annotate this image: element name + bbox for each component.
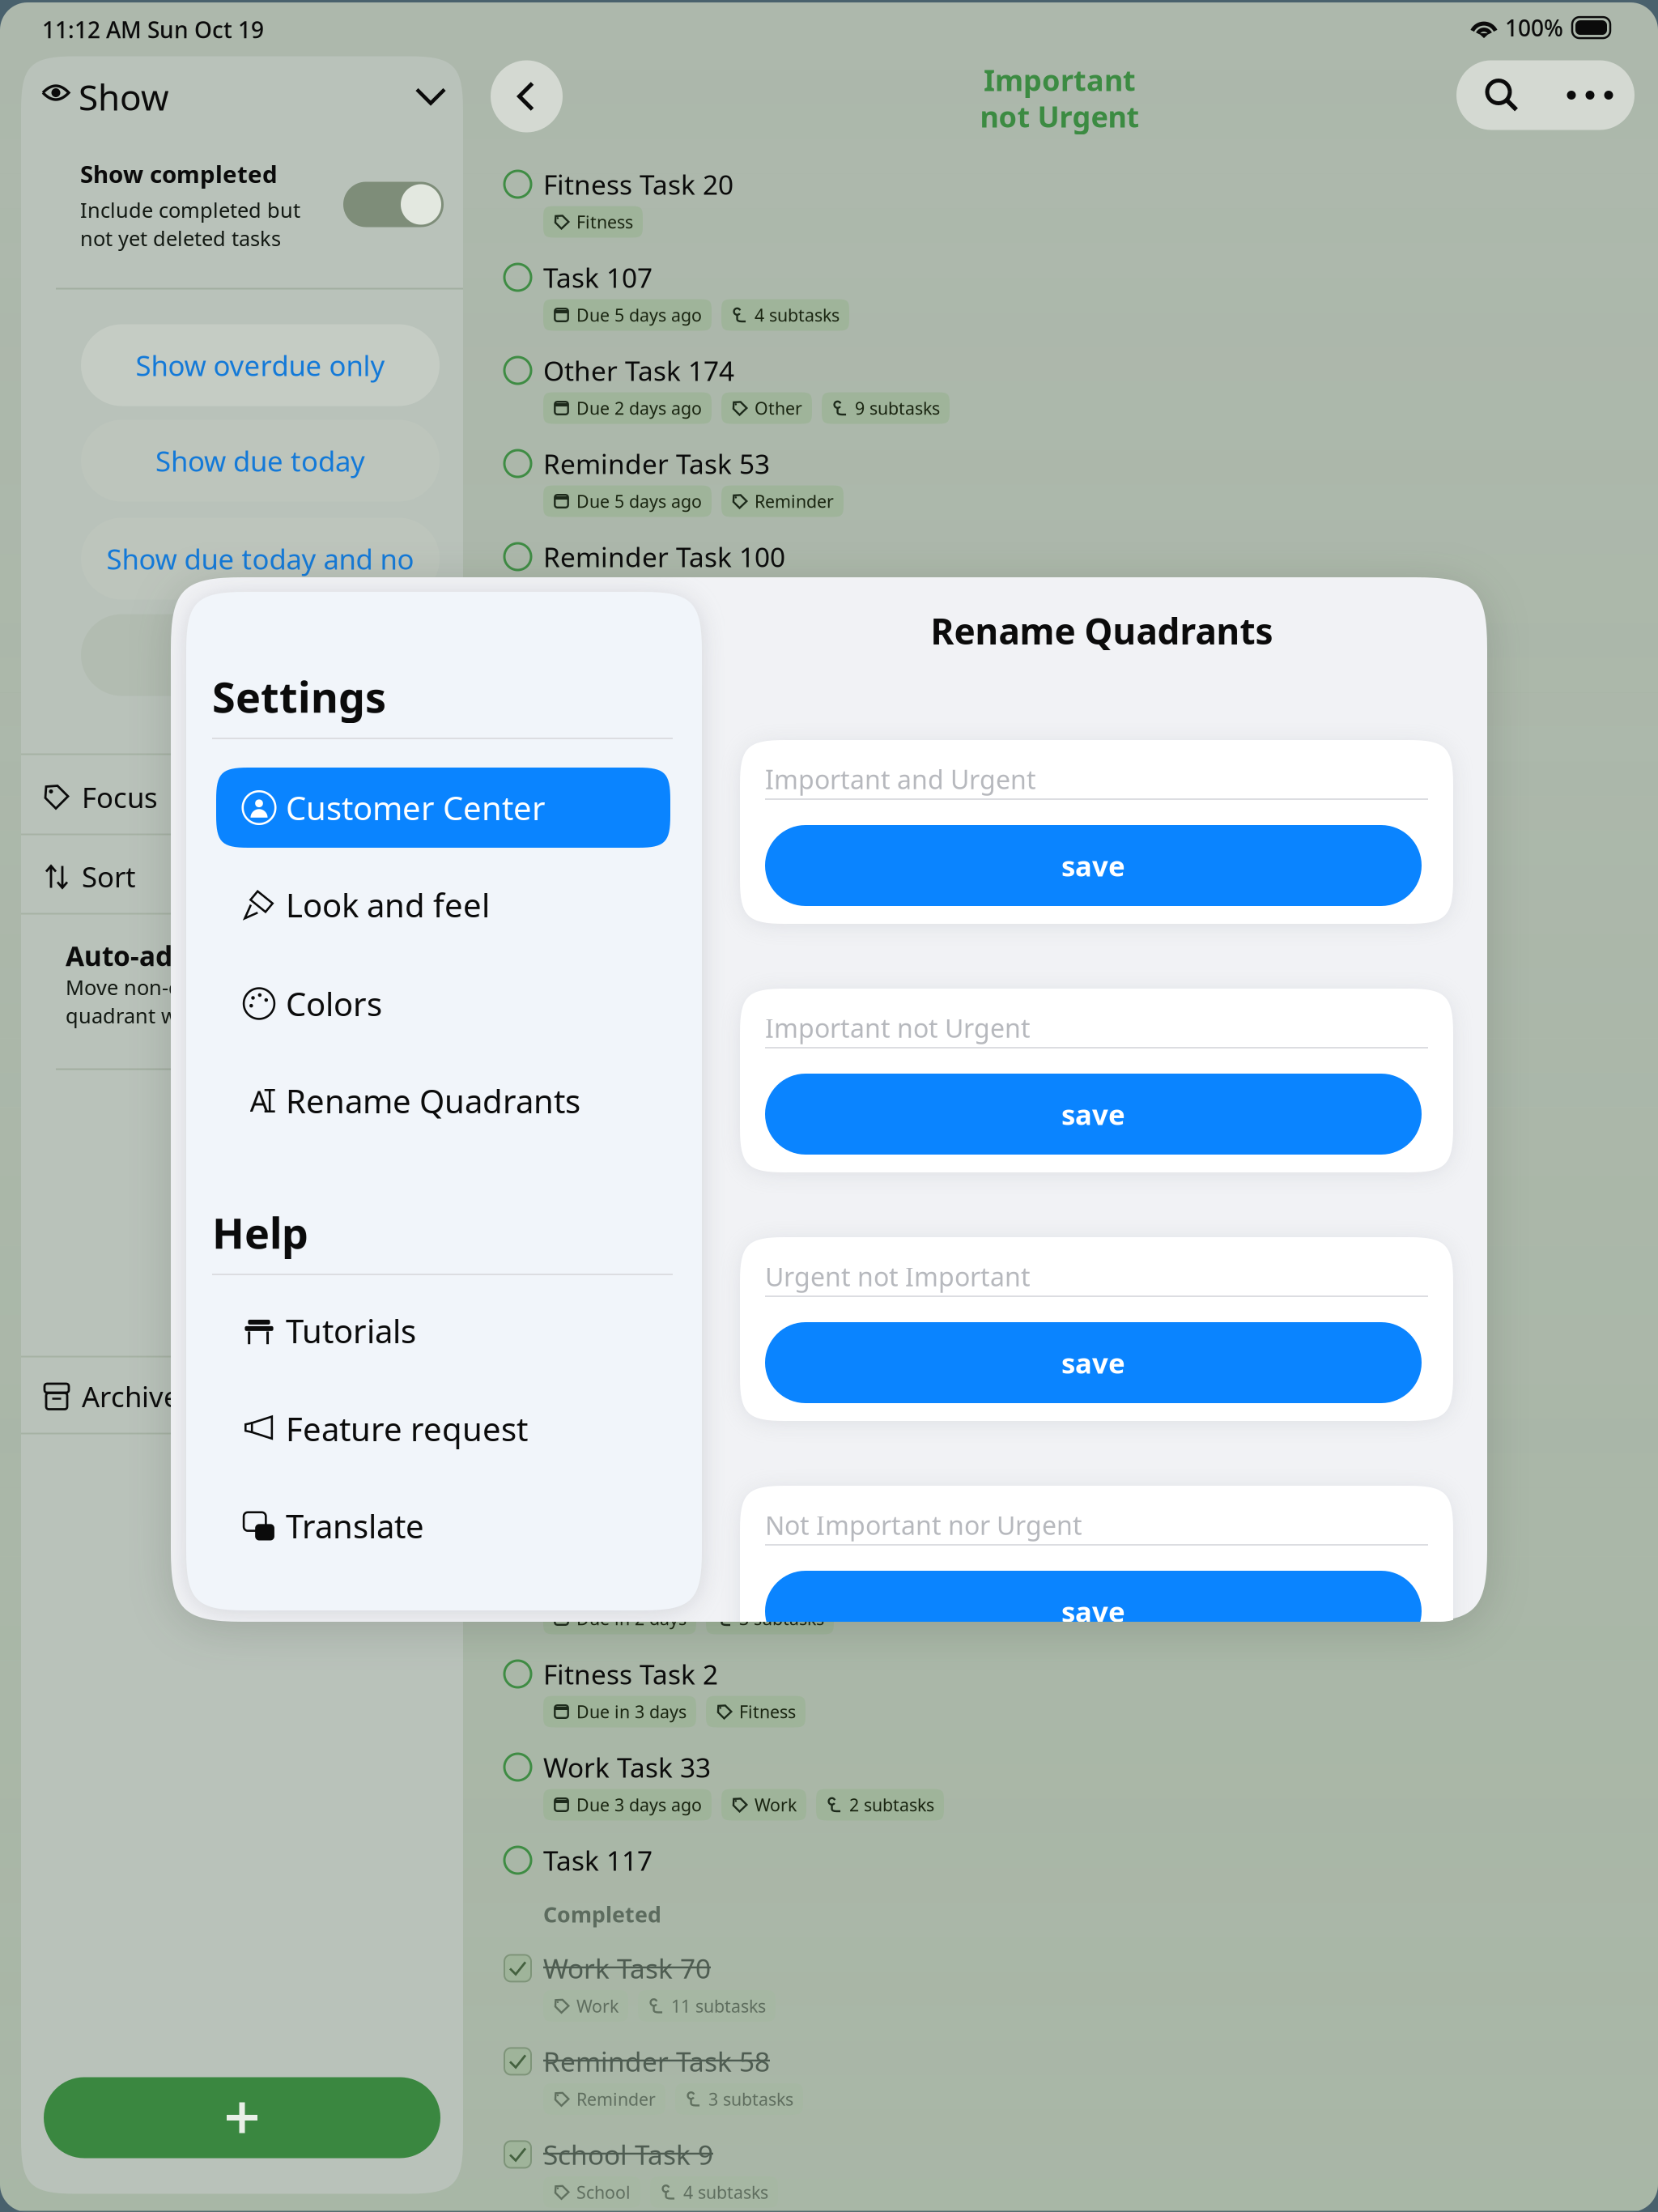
button[interactable]: More xyxy=(1545,60,1635,130)
button[interactable]: save xyxy=(765,825,1422,906)
button[interactable]: Show overdue only xyxy=(81,324,440,406)
staticText: not yet deleted tasks xyxy=(80,225,281,252)
button[interactable]: Other Task 51 xyxy=(504,912,1638,983)
button[interactable]: Task 92 xyxy=(504,1564,1638,1634)
button[interactable]: Task 23 xyxy=(504,1098,1638,1169)
button[interactable]: Search xyxy=(1456,60,1545,130)
staticText: Other Task 174 xyxy=(543,353,734,388)
button[interactable]: Fitness Task 41 xyxy=(504,1005,1638,1076)
staticText: School Task 36 xyxy=(543,1191,729,1226)
staticText: 2 subtasks xyxy=(849,1793,934,1816)
button[interactable]: Fitness Task 2 xyxy=(504,1657,1638,1727)
staticText: quadrant when due date passes xyxy=(66,1002,376,1029)
button[interactable]: School Task 88 xyxy=(504,633,1638,703)
button[interactable]: Tutorials xyxy=(216,1291,670,1371)
button[interactable]: Translate xyxy=(216,1486,670,1566)
staticText: Fitness xyxy=(755,1048,811,1071)
staticText: 9 subtasks xyxy=(855,397,940,419)
staticText: Translate xyxy=(286,1504,424,1547)
staticText: Archive xyxy=(82,1378,180,1415)
button[interactable]: Show xyxy=(21,56,463,134)
button[interactable]: save xyxy=(765,1074,1422,1155)
staticText: 4 subtasks xyxy=(683,2181,768,2203)
button[interactable]: Reminder Task 77 xyxy=(504,1378,1638,1448)
button[interactable]: Show due today and no xyxy=(81,518,440,600)
staticText: Reminder Task 77 xyxy=(543,1377,770,1413)
staticText: Work xyxy=(755,1328,797,1351)
staticText: Sun Oct 19 xyxy=(147,14,264,44)
staticText: Fitness Task 41 xyxy=(543,1004,733,1040)
button[interactable]: Work Task 70 xyxy=(504,1951,1638,2022)
staticText: Settings xyxy=(212,668,386,724)
button[interactable]: save xyxy=(765,1571,1422,1652)
staticText: Reminder xyxy=(755,490,834,513)
button[interactable]: save xyxy=(765,1322,1422,1403)
staticText: 2 subtasks xyxy=(755,862,840,885)
staticText: School xyxy=(576,2181,631,2203)
button[interactable]: Reminder Task 58 xyxy=(504,2044,1638,2115)
button[interactable]: Other Task 19 xyxy=(504,1471,1638,1541)
button[interactable]: Task 117 xyxy=(504,1843,1638,1877)
staticText: 100% xyxy=(1505,13,1563,43)
button[interactable]: Customer Center xyxy=(216,768,670,848)
staticText: Customer Center xyxy=(286,786,546,829)
staticText: Show overdue only xyxy=(136,347,385,384)
staticText: 3 subtasks xyxy=(739,1607,824,1630)
button[interactable]: Back xyxy=(491,60,563,132)
staticText: Due 5 days ago xyxy=(576,303,702,326)
staticText: Work Task 70 xyxy=(543,1950,711,1986)
button[interactable]: Task 107 xyxy=(504,260,1638,331)
button[interactable]: Reminder Task 53 xyxy=(504,447,1638,517)
staticText: save xyxy=(1061,1344,1125,1381)
staticText: not Urgent xyxy=(980,97,1139,135)
button[interactable]: Other Task 174 xyxy=(504,353,1638,424)
button[interactable]: School Task 9 xyxy=(504,2137,1638,2208)
staticText: Help xyxy=(212,1204,308,1260)
button[interactable]: Look and feel xyxy=(216,865,670,945)
button[interactable]: Reminder Task 100 xyxy=(504,540,1638,610)
button[interactable]: A xyxy=(216,1061,670,1141)
button[interactable]: School Task 36 xyxy=(504,1191,1638,1262)
staticText: Reminder xyxy=(746,1421,826,1444)
button[interactable]: Add task xyxy=(44,2077,440,2158)
button[interactable]: Work Task 12 xyxy=(504,726,1638,796)
staticText: Due in 2 days xyxy=(576,1607,687,1630)
staticText: Look and feel xyxy=(286,883,490,926)
button[interactable] xyxy=(81,614,440,696)
button[interactable]: Sort xyxy=(21,840,463,913)
button[interactable]: Work Task 5 xyxy=(504,1285,1638,1355)
staticText: Other xyxy=(731,1514,779,1537)
staticText: save xyxy=(1061,847,1125,884)
staticText: Important and Urgent xyxy=(765,762,1036,796)
staticText: Include completed but xyxy=(80,196,300,223)
button[interactable]: Feature request xyxy=(216,1389,670,1469)
staticText: 4 subtasks xyxy=(755,303,840,326)
staticText: 3 subtasks xyxy=(708,2087,793,2110)
button[interactable]: Colors xyxy=(216,963,670,1044)
staticText: Task 23 xyxy=(543,1097,637,1133)
button[interactable]: Fitness Task 20 xyxy=(504,167,1638,238)
staticText: save xyxy=(1061,1095,1125,1133)
staticText: Work xyxy=(576,1994,619,2017)
staticText: Task 64 xyxy=(543,818,637,854)
button[interactable]: Show due today xyxy=(81,420,440,502)
button[interactable]: Work Task 33 xyxy=(504,1750,1638,1821)
staticText: Reminder Task 58 xyxy=(543,2043,770,2079)
button[interactable]: Task 64 xyxy=(504,819,1638,889)
staticText: 6 subtasks xyxy=(878,1421,963,1444)
button[interactable]: Archive xyxy=(21,1360,463,1433)
staticText: Due 4 days ago xyxy=(576,769,702,792)
button[interactable]: Focus xyxy=(21,761,463,834)
staticText: Completed xyxy=(543,1900,661,1929)
staticText: Fitness xyxy=(739,1700,796,1723)
staticText: Not Important nor Urgent xyxy=(765,1508,1082,1542)
